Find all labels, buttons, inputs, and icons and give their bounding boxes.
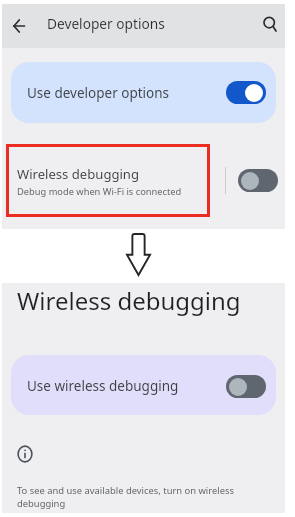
button[interactable]: Turn off (226, 81, 266, 104)
button[interactable]: Turn on (226, 375, 266, 398)
button[interactable] (11, 62, 276, 123)
button[interactable]: Back (0, 4, 37, 48)
staticText: Use wireless debugging (27, 377, 179, 395)
staticText: Debug mode when Wi-Fi is connected (17, 185, 182, 198)
staticText: To see and use available devices, turn o… (17, 484, 237, 510)
staticText: Use developer options (27, 84, 170, 102)
staticText: Wireless debugging (17, 165, 140, 183)
button[interactable]: Turn on (238, 169, 278, 192)
staticText: Wireless debugging (17, 284, 241, 317)
staticText: Developer options (47, 14, 165, 33)
button[interactable]: Search (252, 2, 289, 46)
button[interactable] (11, 355, 276, 415)
